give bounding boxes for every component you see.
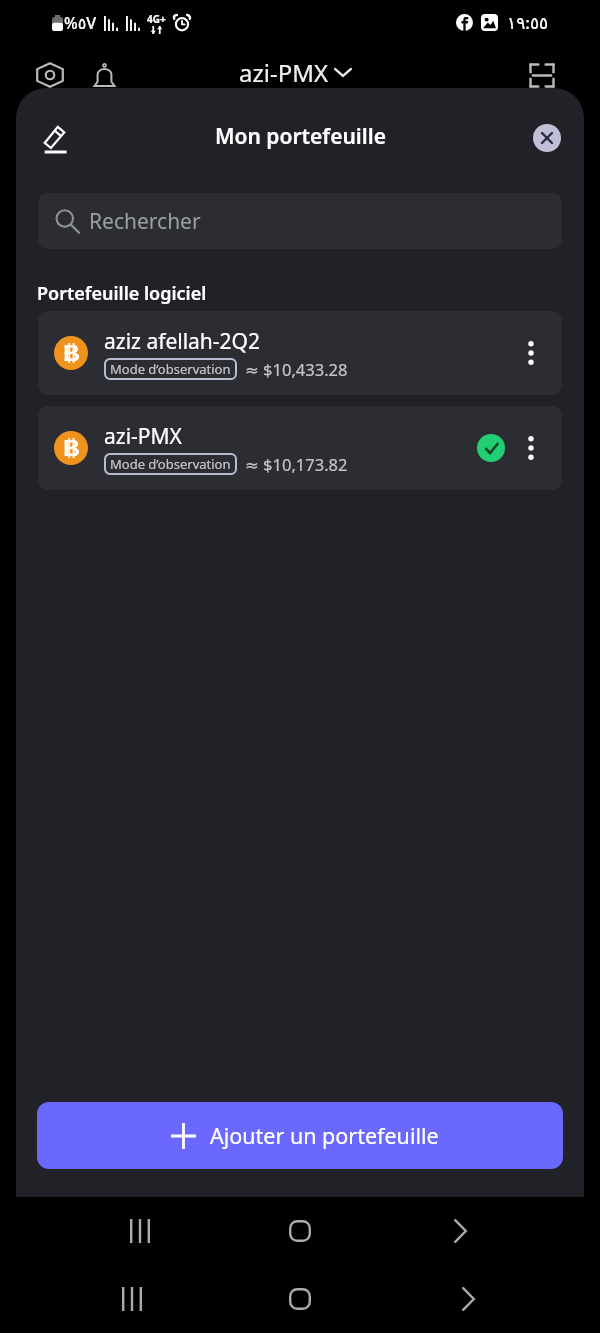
staticText: aziz afellah-2Q2 <box>104 327 261 356</box>
button[interactable]: Scan QR code <box>520 53 564 97</box>
button[interactable]: aziz afellah-2Q2 <box>38 311 562 395</box>
button[interactable]: Recents <box>116 1207 164 1255</box>
button[interactable]: Settings <box>29 54 71 96</box>
staticText: Rechercher <box>89 207 201 236</box>
staticText: Portefeuille logiciel <box>37 281 207 306</box>
staticText: Ajouter un portefeuille <box>210 1121 439 1150</box>
button[interactable]: Close <box>533 124 561 152</box>
button[interactable]: Ajouter un portefeuille <box>37 1102 563 1169</box>
staticText: azi-PMX <box>239 56 329 89</box>
button[interactable]: Recents <box>108 1275 156 1323</box>
button[interactable]: Back <box>444 1275 492 1323</box>
button[interactable]: azi-PMX <box>38 406 562 490</box>
staticText: azi-PMX <box>104 422 182 451</box>
button[interactable]: Back <box>436 1207 484 1255</box>
staticText: ≈ $10,433.28 <box>245 358 348 380</box>
button[interactable]: Rechercher <box>38 193 562 249</box>
staticText: Mode d’observation <box>110 455 231 473</box>
staticText: 4G+ <box>147 12 166 26</box>
button[interactable]: azi-PMX <box>231 52 359 93</box>
button[interactable]: Home <box>276 1275 324 1323</box>
button[interactable]: More options <box>514 431 548 465</box>
staticText: ١٩:٥٥ <box>507 11 549 34</box>
button[interactable]: Edit <box>33 116 77 160</box>
button[interactable]: Home <box>276 1207 324 1255</box>
staticText: ≈ $10,173.82 <box>245 453 348 475</box>
staticText: Mon portefeuille <box>215 122 386 151</box>
button[interactable]: Notifications <box>83 54 125 96</box>
staticText: Mode d’observation <box>110 360 231 378</box>
staticText: %٥V <box>64 12 97 34</box>
button[interactable]: More options <box>514 336 548 370</box>
